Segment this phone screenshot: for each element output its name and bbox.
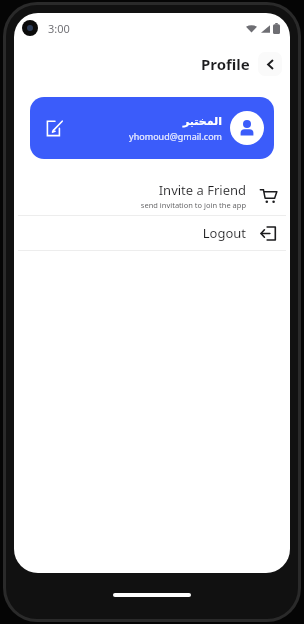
staticText: Invite a Friend (158, 181, 246, 199)
staticText: Profile (201, 54, 250, 74)
button[interactable]: Edit profile (30, 97, 274, 159)
button[interactable]: Back (258, 52, 282, 76)
staticText: send invitation to join the app (140, 200, 246, 210)
staticText: 3:00 (48, 21, 70, 36)
staticText: Logout (202, 224, 246, 242)
button[interactable]: Invite a Friend (14, 175, 290, 215)
staticText: المختبر (182, 115, 222, 128)
button[interactable]: Logout (14, 216, 290, 250)
staticText: yhomoud@gmail.com (129, 130, 222, 142)
button[interactable]: Edit profile (42, 115, 68, 141)
